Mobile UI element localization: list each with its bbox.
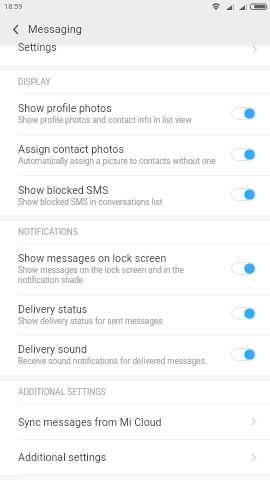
button[interactable]: Toggle Delivery status [231,307,256,320]
button[interactable]: Toggle Assign contact photos [231,148,256,161]
staticText: ADDITIONAL SETTINGS [18,387,106,397]
staticText: Settings [18,41,57,53]
staticText: Sync messages from Mi Cloud [18,416,251,428]
button[interactable]: Toggle Delivery sound [231,348,256,361]
staticText: Show messages on lock screen [18,252,167,264]
button[interactable]: Sync messages from Mi Cloud [0,404,270,439]
button[interactable]: Assign contact photos [0,135,270,175]
staticText: 18:59 [4,2,23,11]
staticText: DISPLAY [18,77,51,87]
staticText: Show blocked SMS in conversations list [18,197,163,207]
staticText: Receive sound notifications for delivere… [18,356,208,366]
button[interactable]: Toggle Show profile photos [231,107,256,120]
button[interactable]: Delivery status [0,295,270,334]
staticText: Additional settings [18,451,251,463]
staticText: Delivery sound [18,343,87,355]
button[interactable]: Settings [0,46,270,65]
staticText: Assign contact photos [18,143,124,155]
staticText: Show blocked SMS [18,184,109,196]
staticText: NOTIFICATIONS [18,227,78,237]
staticText: Automatically assign a picture to contac… [18,156,216,166]
button[interactable]: Toggle Show blocked SMS [231,188,256,201]
staticText: Show profile photos and contact info in … [18,115,192,125]
button[interactable]: Show profile photos [0,94,270,134]
button[interactable]: Back [7,21,23,37]
staticText: Messaging [28,23,82,36]
staticText: Delivery status [18,303,88,315]
button[interactable]: Delivery sound [0,335,270,375]
button[interactable]: Show blocked SMS [0,176,270,215]
button[interactable]: Toggle Show messages on lock screen [231,262,256,275]
staticText: Show profile photos [18,102,112,114]
staticText: Show delivery status for sent messages [18,316,163,326]
staticText: Show messages on the lock screen and in … [18,265,184,285]
button[interactable]: Show messages on lock screen [0,244,270,294]
button[interactable]: Additional settings [0,440,270,474]
